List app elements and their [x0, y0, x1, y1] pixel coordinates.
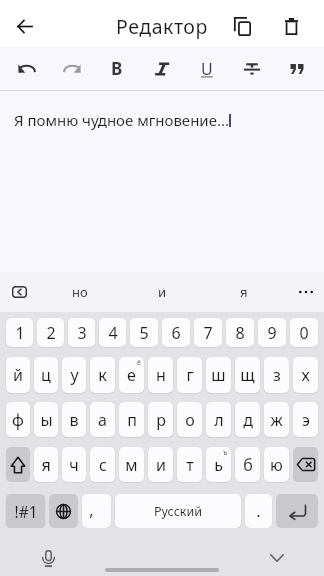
button[interactable]: Back [9, 11, 39, 41]
staticText: в [69, 409, 79, 431]
staticText: 3 [77, 322, 87, 344]
button[interactable]: я [34, 447, 58, 482]
button[interactable]: щ [235, 357, 260, 393]
button[interactable]: 1 [6, 318, 33, 347]
button[interactable]: , [82, 494, 111, 528]
button[interactable]: 4 [99, 318, 126, 347]
staticText: 2 [46, 322, 56, 344]
button[interactable]: п [119, 402, 144, 437]
staticText: ъ [223, 448, 228, 458]
button[interactable]: 2 [37, 318, 64, 347]
button[interactable]: ш [206, 357, 231, 393]
button[interactable]: 0 [290, 318, 318, 347]
staticText: 0 [299, 322, 309, 344]
button[interactable]: ы [34, 402, 58, 437]
button[interactable]: ю [264, 447, 289, 482]
button[interactable]: 9 [258, 318, 286, 347]
button[interactable]: 8 [226, 318, 254, 347]
staticText: я [240, 283, 248, 301]
staticText: 5 [139, 322, 149, 344]
staticText: г [186, 364, 194, 386]
staticText: Русский [154, 503, 202, 520]
button[interactable]: в [62, 402, 86, 437]
staticText: 9 [267, 322, 277, 344]
staticText: ь [214, 454, 223, 476]
button[interactable]: Change language [49, 494, 78, 528]
button[interactable]: л [206, 402, 231, 437]
staticText: !#1 [14, 501, 38, 522]
button[interactable]: Hide keyboard [263, 544, 291, 572]
button[interactable]: Русский [115, 494, 241, 528]
button[interactable]: к [90, 357, 115, 393]
button[interactable]: ч [62, 447, 86, 482]
button[interactable]: и [121, 272, 203, 312]
button[interactable]: а [90, 402, 115, 437]
staticText: ж [270, 409, 283, 431]
button[interactable]: и [148, 447, 173, 482]
staticText: ч [69, 454, 79, 476]
button[interactable]: Enter [276, 494, 318, 528]
button[interactable]: д [235, 402, 260, 437]
button[interactable]: э [293, 402, 318, 437]
button[interactable]: More suggestions [294, 280, 318, 304]
button[interactable]: н [148, 357, 173, 393]
button[interactable]: Text style [229, 47, 274, 90]
staticText: й [13, 364, 23, 386]
button[interactable]: Bold [94, 47, 139, 90]
staticText: ш [211, 364, 226, 386]
staticText: U [201, 58, 213, 80]
button[interactable]: е [119, 357, 144, 393]
staticText: но [72, 283, 88, 301]
staticText: д [243, 409, 253, 431]
staticText: м [125, 454, 138, 476]
button[interactable]: Voice input [34, 544, 62, 572]
button[interactable]: ц [34, 357, 58, 393]
button[interactable]: Duplicate [226, 10, 258, 42]
staticText: э [302, 409, 310, 431]
button[interactable]: ь [206, 447, 231, 482]
button[interactable]: г [177, 357, 202, 393]
button[interactable]: !#1 [6, 494, 45, 528]
button[interactable]: Delete [275, 10, 307, 42]
button[interactable]: Expand toolbar [6, 279, 32, 305]
staticText: л [214, 409, 224, 431]
button[interactable]: Backspace [293, 447, 318, 482]
button[interactable]: 5 [130, 318, 158, 347]
button[interactable]: ж [264, 402, 289, 437]
button[interactable]: Undo [4, 47, 49, 90]
button[interactable]: й [6, 357, 30, 393]
button[interactable]: х [293, 357, 318, 393]
button[interactable]: у [62, 357, 86, 393]
button[interactable]: Shift [6, 447, 30, 482]
staticText: р [156, 409, 166, 431]
staticText: ё [137, 358, 141, 368]
button[interactable]: с [90, 447, 115, 482]
button[interactable]: б [235, 447, 260, 482]
button[interactable]: ф [6, 402, 30, 437]
button[interactable]: Underline [184, 47, 229, 90]
button[interactable]: 3 [68, 318, 95, 347]
staticText: 4 [108, 322, 118, 344]
button[interactable]: я [203, 272, 285, 312]
staticText: Я помню чудное мгновение... [14, 110, 229, 130]
button[interactable]: . [245, 494, 272, 528]
staticText: н [156, 364, 166, 386]
button[interactable]: Italic [139, 47, 184, 90]
staticText: B [111, 57, 123, 80]
button[interactable]: Quote [274, 47, 319, 90]
button[interactable]: о [177, 402, 202, 437]
staticText: п [127, 409, 137, 431]
button[interactable]: Redo [49, 47, 94, 90]
button[interactable]: 7 [194, 318, 222, 347]
staticText: к [98, 364, 107, 386]
staticText: щ [240, 364, 255, 386]
button[interactable]: но [39, 272, 121, 312]
button[interactable]: 6 [162, 318, 190, 347]
button[interactable]: р [148, 402, 173, 437]
button[interactable]: т [177, 447, 202, 482]
button[interactable]: з [264, 357, 289, 393]
staticText: а [98, 409, 107, 431]
staticText: 6 [171, 322, 181, 344]
button[interactable]: м [119, 447, 144, 482]
staticText: 7 [203, 322, 213, 344]
